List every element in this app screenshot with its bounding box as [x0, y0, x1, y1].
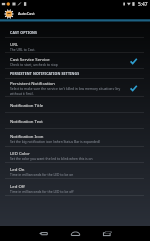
button[interactable]: Led On — [0, 163, 150, 179]
staticText: Led On — [10, 166, 25, 172]
staticText: 5:47 — [138, 1, 148, 8]
button[interactable]: Notification Icon — [0, 129, 150, 147]
button[interactable]: URL — [0, 38, 150, 53]
staticText: Notification Text — [10, 118, 43, 124]
staticText: URL — [10, 41, 19, 47]
staticText: Select to make sure the service isn't ki… — [10, 86, 121, 96]
button[interactable]: Recent apps — [91, 226, 123, 241]
button[interactable]: Cast Service Service — [0, 53, 150, 69]
staticText: Persistent Notification — [10, 80, 55, 86]
button[interactable]: Back — [27, 226, 59, 241]
staticText: Set the color you want the led to blink … — [10, 156, 93, 160]
staticText: Cast Service Service — [10, 56, 50, 62]
staticText: PERSISTENT NOTIFICATION SETTINGS — [10, 71, 80, 76]
staticText: Time in milliseconds for the LED to be o… — [10, 172, 74, 176]
staticText: Time in milliseconds for the LED to be o… — [10, 189, 74, 193]
button[interactable]: Led Off — [0, 179, 150, 196]
button[interactable]: Notification Title — [0, 97, 150, 113]
button[interactable]: Persistent Notification — [0, 79, 150, 97]
staticText: Led Off — [10, 183, 25, 189]
button[interactable]: LED Color — [0, 147, 150, 163]
staticText: Notification Icon — [10, 133, 44, 139]
staticText: The URL to Cast. — [10, 47, 36, 51]
staticText: Notification Title — [10, 102, 44, 108]
staticText: CAST OPTIONS — [10, 30, 38, 35]
staticText: Set the big notification icon (when Stat… — [10, 139, 100, 143]
staticText: Check to start, uncheck to stop — [10, 62, 58, 66]
staticText: LED Color — [10, 150, 30, 156]
button[interactable]: Home — [59, 226, 91, 241]
button[interactable]: Notification Text — [0, 113, 150, 129]
staticText: AutoCast — [18, 11, 35, 16]
